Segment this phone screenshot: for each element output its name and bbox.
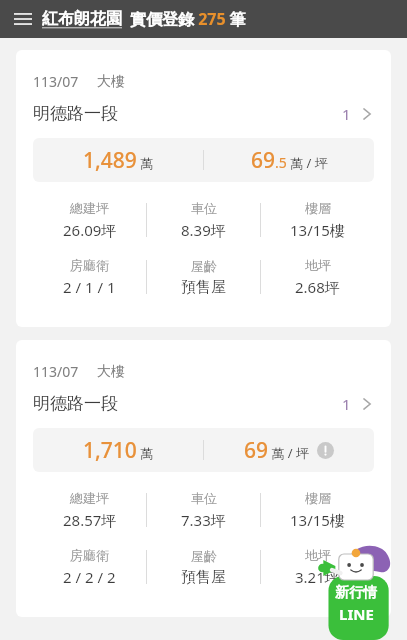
staticText: 8.39坪 <box>181 220 226 240</box>
staticText: 房廳衛 <box>70 547 109 563</box>
staticText: 總建坪 <box>70 490 109 506</box>
staticText: 69 萬 / 坪 <box>244 436 309 465</box>
staticText: 總建坪 <box>70 200 109 216</box>
staticText: 3.21坪 <box>295 567 340 587</box>
button[interactable]: LINE 新行情 <box>313 540 399 640</box>
staticText: 地坪 <box>305 547 331 563</box>
button[interactable]: 113/07 <box>16 340 391 617</box>
staticText: 1,489 萬 <box>83 146 154 175</box>
staticText: 樓層 <box>305 490 331 506</box>
staticText: 房廳衛 <box>70 257 109 273</box>
staticText: 地坪 <box>305 257 331 273</box>
staticText: 大樓 <box>97 363 125 381</box>
staticText: 預售屋 <box>181 568 226 587</box>
button[interactable]: Info <box>317 442 334 459</box>
staticText: 113/07 <box>33 72 79 91</box>
staticText: 28.57坪 <box>63 510 117 530</box>
staticText: LINE <box>339 604 374 624</box>
staticText: 13/15樓 <box>290 220 345 240</box>
staticText: 113/07 <box>33 362 79 381</box>
staticText: 車位 <box>191 490 217 506</box>
button[interactable]: Menu <box>10 6 36 32</box>
staticText: 1,710 萬 <box>83 436 154 465</box>
staticText: 大樓 <box>97 73 125 91</box>
button[interactable]: 紅布朗花園 <box>42 9 122 29</box>
other: Open <box>360 397 374 411</box>
staticText: 1 <box>342 394 351 414</box>
staticText: 2.68坪 <box>295 277 340 297</box>
staticText: 7.33坪 <box>181 510 226 530</box>
staticText: 新行情 <box>335 584 377 602</box>
staticText: 13/15樓 <box>290 510 345 530</box>
staticText: 2 / 1 / 1 <box>63 277 116 297</box>
staticText: 屋齡 <box>191 548 217 564</box>
staticText: 預售屋 <box>181 278 226 297</box>
button[interactable]: 113/07 <box>16 50 391 327</box>
button[interactable]: 1,489 萬 <box>33 138 374 182</box>
staticText: 26.09坪 <box>63 220 117 240</box>
staticText: 2 / 2 / 2 <box>63 567 116 587</box>
other: Open <box>360 107 374 121</box>
button[interactable]: 1,710 萬 <box>33 428 374 472</box>
staticText: 69.5 萬 / 坪 <box>251 146 328 175</box>
staticText: 明德路一段 <box>33 393 118 414</box>
staticText: 實價登錄 275 筆 <box>130 8 246 30</box>
staticText: 樓層 <box>305 200 331 216</box>
staticText: 屋齡 <box>191 258 217 274</box>
staticText: 車位 <box>191 200 217 216</box>
staticText: 明德路一段 <box>33 103 118 124</box>
staticText: 1 <box>342 104 351 124</box>
